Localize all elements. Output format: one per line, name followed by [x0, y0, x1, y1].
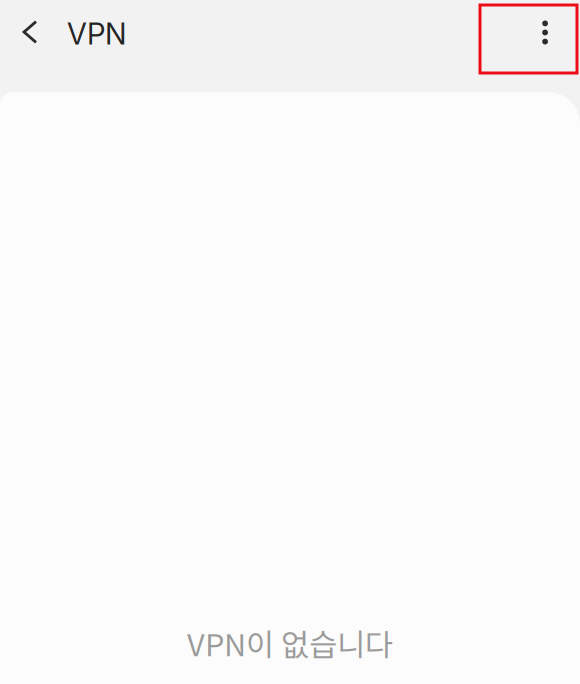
staticText: VPN — [67, 16, 127, 51]
button[interactable]: Back — [5, 0, 55, 64]
button[interactable]: More options — [480, 5, 577, 73]
staticText: VPN이 없습니다 — [187, 621, 393, 665]
